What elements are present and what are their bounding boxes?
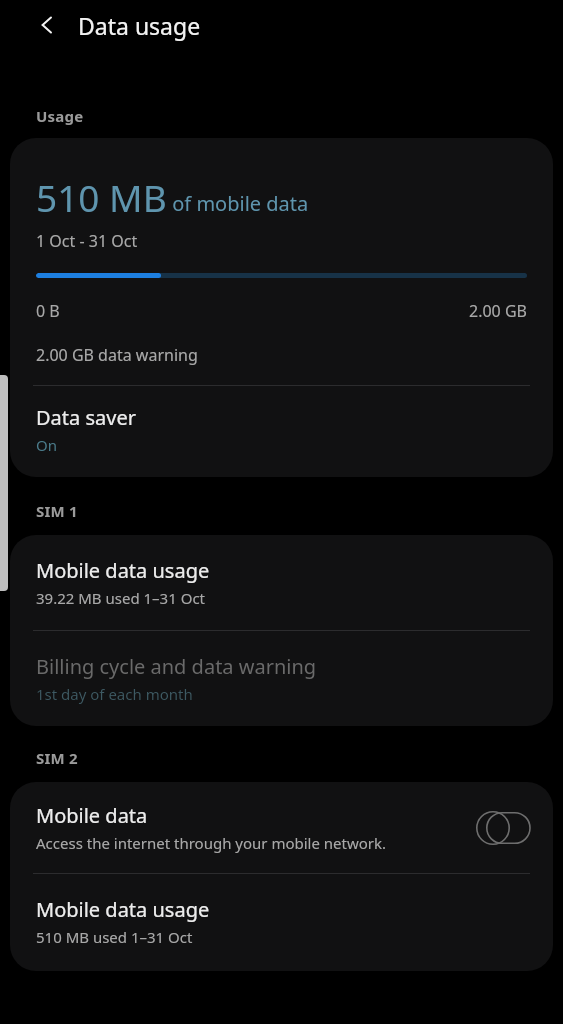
staticText: Billing cycle and data warning [36, 653, 317, 680]
staticText: 0 B [36, 300, 60, 322]
button[interactable]: Back [20, 0, 74, 50]
staticText: 39.22 MB used 1–31 Oct [36, 588, 206, 608]
staticText: On [36, 435, 57, 455]
staticText: 2.00 GB data warning [36, 344, 198, 366]
staticText: 1st day of each month [36, 684, 193, 704]
staticText: Access the internet through your mobile … [36, 833, 387, 853]
staticText: Data usage [78, 10, 201, 41]
button[interactable]: Data saver [10, 386, 553, 477]
staticText: SIM 1 [36, 501, 78, 521]
button[interactable]: Mobile data [10, 782, 553, 873]
staticText: Mobile data usage [36, 557, 210, 584]
staticText: 510 MB used 1–31 Oct [36, 927, 193, 947]
staticText: Data saver [36, 404, 136, 431]
button[interactable]: Mobile data toggle, off [475, 809, 531, 847]
staticText: Usage [36, 106, 84, 126]
button[interactable]: Mobile data usage [10, 535, 553, 630]
button[interactable]: Mobile data usage [10, 874, 553, 971]
button[interactable]: Billing cycle and data warning [10, 631, 553, 726]
staticText: Mobile data usage [36, 896, 210, 923]
staticText: 2.00 GB [469, 300, 527, 322]
staticText: of mobile data [167, 190, 309, 217]
staticText: Mobile data [36, 802, 148, 829]
staticText: 1 Oct - 31 Oct [36, 230, 138, 252]
staticText: 510 MB [36, 172, 167, 222]
staticText: SIM 2 [36, 748, 78, 768]
